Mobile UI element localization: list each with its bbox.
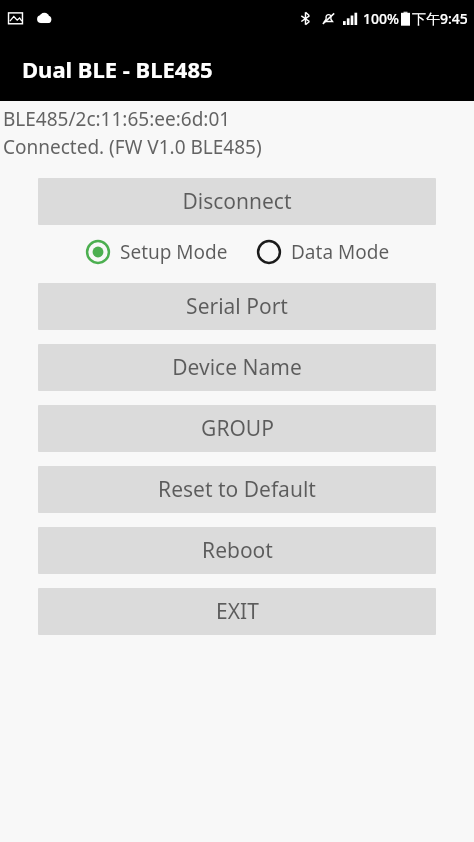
staticText: Disconnect — [182, 187, 292, 216]
button[interactable]: Serial Port — [38, 283, 436, 330]
staticText: Dual BLE - BLE485 — [22, 54, 213, 84]
staticText: 下午9:45 — [412, 9, 468, 28]
button[interactable]: Device Name — [38, 344, 436, 391]
staticText: Connected. (FW V1.0 BLE485) — [3, 134, 262, 160]
button[interactable]: Reboot — [38, 527, 436, 574]
staticText: 100% — [363, 9, 399, 28]
button[interactable]: Setup Mode — [83, 235, 230, 269]
staticText: GROUP — [201, 414, 274, 443]
staticText: Device Name — [172, 353, 302, 382]
button[interactable]: GROUP — [38, 405, 436, 452]
staticText: Setup Mode — [120, 239, 228, 265]
button[interactable]: Reset to Default — [38, 466, 436, 513]
button[interactable]: Data Mode — [254, 235, 392, 269]
staticText: BLE485/2c:11:65:ee:6d:01 — [3, 106, 231, 132]
staticText: EXIT — [216, 597, 259, 626]
staticText: Reset to Default — [158, 475, 316, 504]
button[interactable]: Disconnect — [38, 178, 436, 225]
staticText: Reboot — [202, 536, 273, 565]
staticText: Data Mode — [291, 239, 390, 265]
staticText: Serial Port — [186, 292, 288, 321]
button[interactable]: EXIT — [38, 588, 436, 635]
